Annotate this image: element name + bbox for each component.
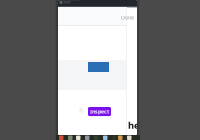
staticText: Done bbox=[121, 14, 134, 21]
staticText: Inspect bbox=[90, 108, 109, 115]
staticText: hel bbox=[128, 119, 143, 131]
button[interactable]: Done bbox=[120, 13, 135, 22]
button[interactable]: Inspect bbox=[88, 107, 111, 116]
staticText: dai bbox=[128, 132, 143, 140]
